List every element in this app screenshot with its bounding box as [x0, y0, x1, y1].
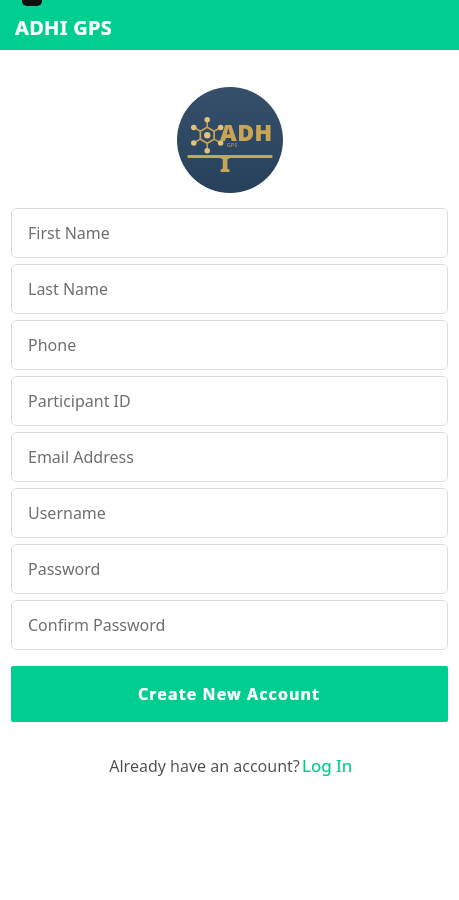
staticText: Create New Account: [138, 683, 321, 705]
staticText: Participant ID: [28, 390, 131, 412]
staticText: Phone: [28, 334, 77, 356]
button[interactable]: First Name: [11, 208, 448, 258]
staticText: Username: [28, 502, 106, 524]
staticText: Email Address: [28, 446, 134, 468]
button[interactable]: Username: [11, 488, 448, 538]
button[interactable]: Participant ID: [11, 376, 448, 426]
staticText: Log In: [302, 754, 353, 777]
button[interactable]: Confirm Password: [11, 600, 448, 650]
button[interactable]: Email Address: [11, 432, 448, 482]
button[interactable]: Create New Account: [11, 666, 448, 722]
button[interactable]: Last Name: [11, 264, 448, 314]
staticText: Password: [28, 558, 101, 580]
staticText: Already have an account?: [107, 755, 302, 777]
button[interactable]: Password: [11, 544, 448, 594]
button[interactable]: Already have an account?: [0, 754, 459, 777]
staticText: Confirm Password: [28, 614, 166, 636]
other: ADHI logo: [177, 87, 283, 193]
staticText: GPS: [227, 142, 238, 149]
staticText: First Name: [28, 222, 110, 244]
staticText: ADHI: [220, 116, 283, 178]
staticText: ADHI GPS: [15, 14, 113, 41]
staticText: Last Name: [28, 278, 109, 300]
button[interactable]: Phone: [11, 320, 448, 370]
